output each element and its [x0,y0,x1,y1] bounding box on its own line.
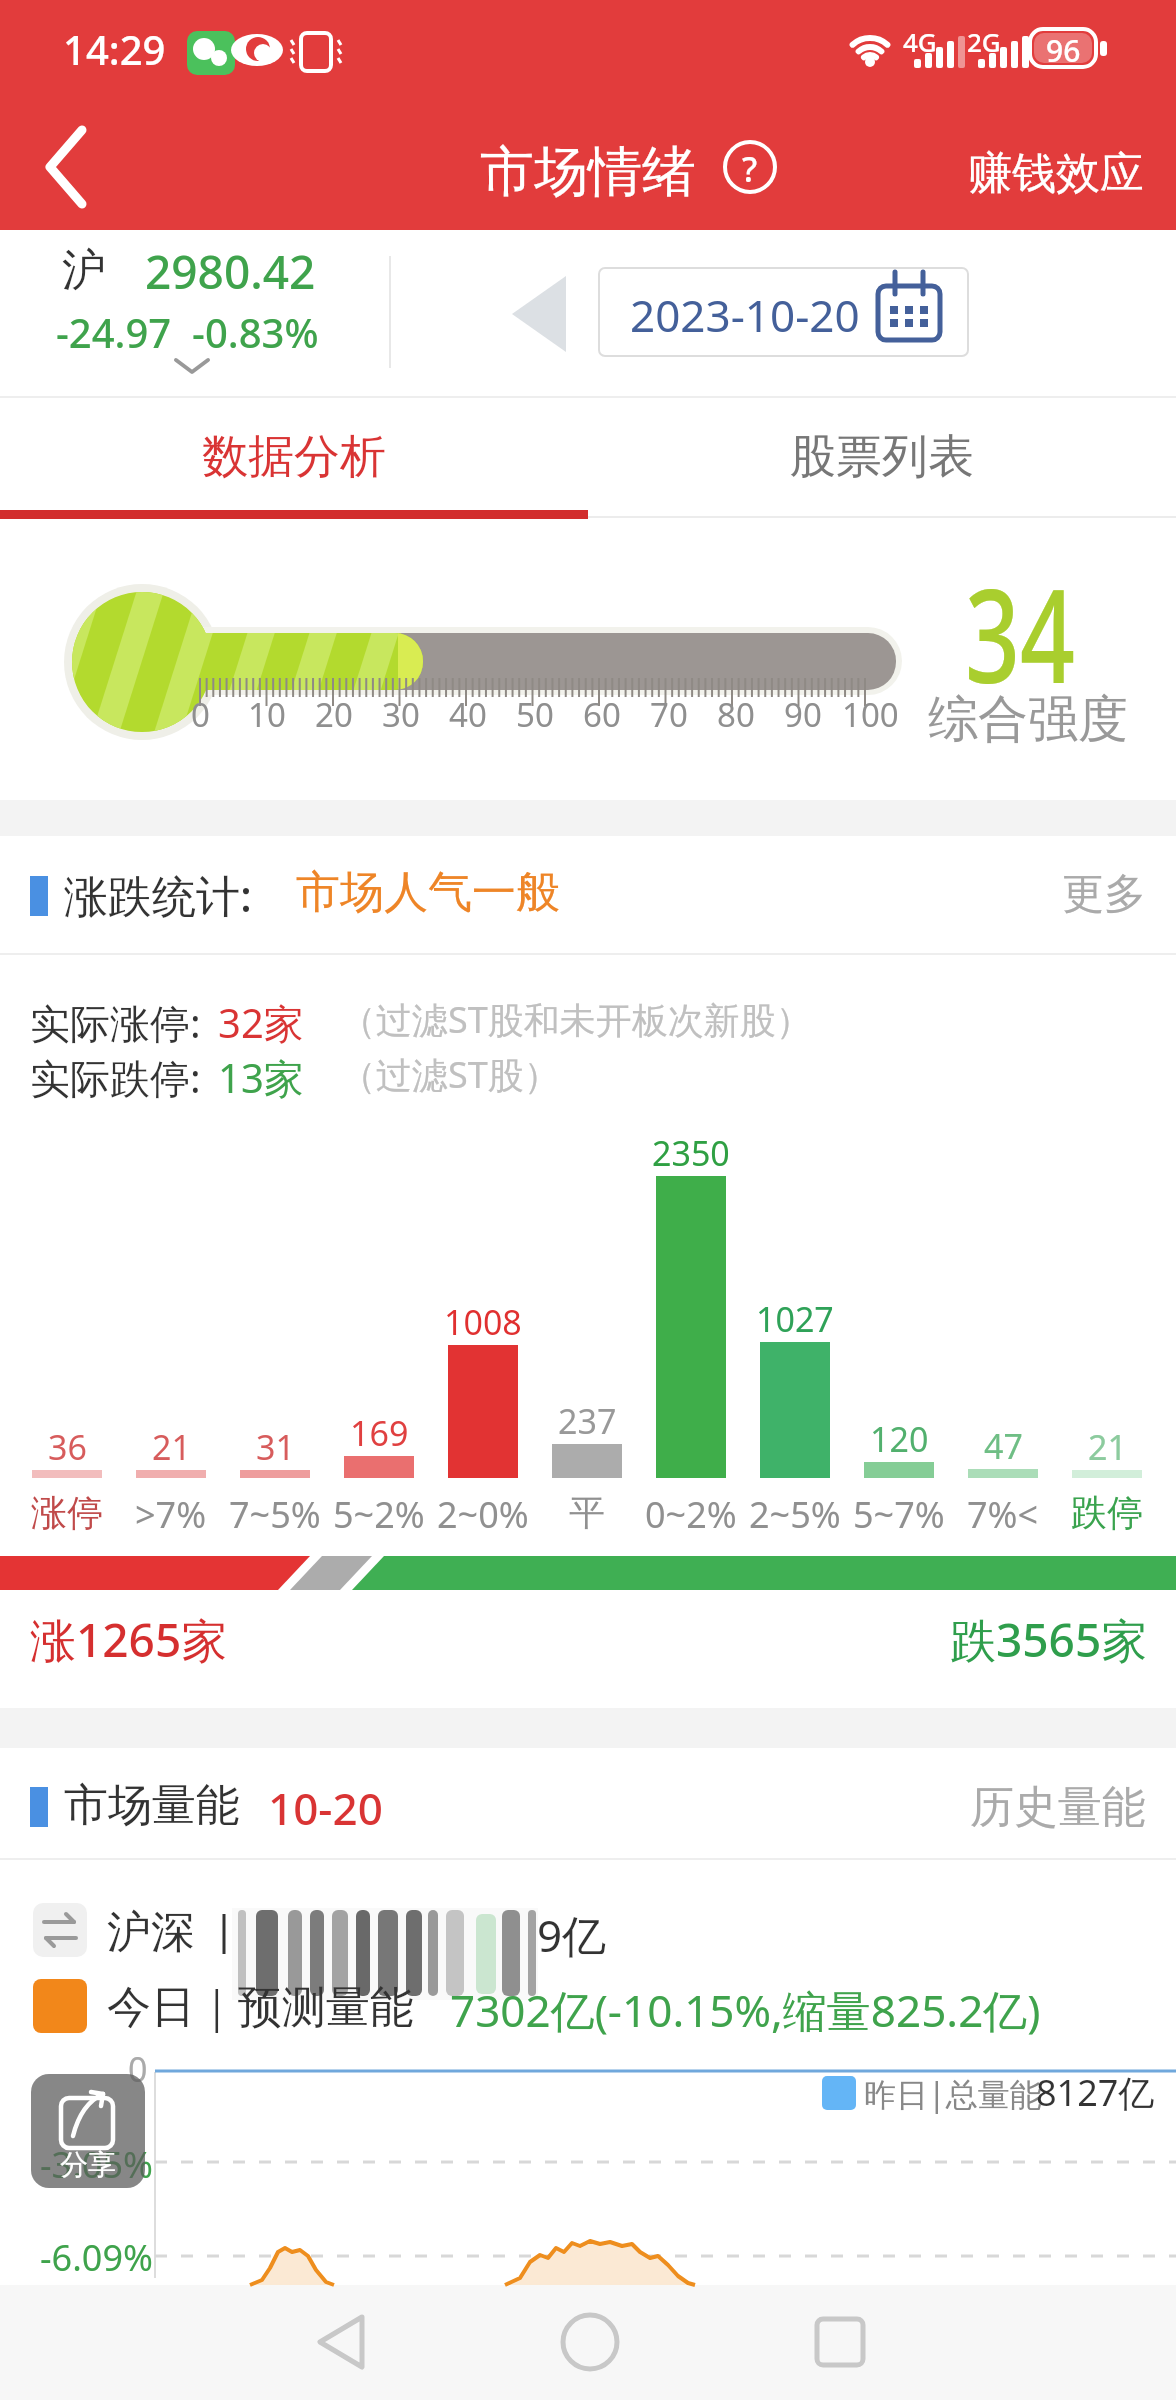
staticText: 100 [842,692,899,737]
staticText: 14:29 [63,22,166,76]
staticText: 237 [558,1398,617,1444]
staticText: 2350 [652,1130,730,1176]
staticText: 数据分析 [202,428,386,486]
staticText: 120 [870,1416,929,1462]
staticText: 30 [382,692,420,737]
button[interactable] [588,400,1176,518]
staticText: 2980.42 [145,240,316,303]
staticText: 13家 [218,1050,304,1105]
staticText: 涨1265家 [30,1608,228,1671]
staticText: 60 [583,692,621,737]
button[interactable] [20,120,130,215]
staticText: 分享 [60,2147,116,2182]
staticText: 0 [191,692,210,737]
button[interactable]: 分享 [31,2074,145,2188]
staticText: 5~2% [333,1490,425,1539]
staticText: 更多 [1062,868,1146,921]
staticText: 90 [784,692,822,737]
staticText: ? [742,146,758,192]
staticText: 36 [48,1424,87,1470]
staticText: 34 [965,544,1075,721]
staticText: 21 [1088,1424,1127,1470]
staticText: 1027 [756,1296,834,1342]
staticText: 2G [967,24,1001,59]
staticText: 169 [350,1410,409,1456]
button[interactable] [280,2295,400,2395]
staticText: 2~0% [437,1490,529,1539]
staticText: 40 [449,692,487,737]
staticText: 昨日|总量能 [864,2072,1042,2116]
staticText: 7~5% [229,1490,321,1539]
staticText: 47 [984,1423,1023,1469]
staticText: 9亿 [537,1905,607,1965]
staticText: 跌3565家 [950,1608,1148,1671]
staticText: 赚钱效应 [968,146,1144,201]
staticText: 0 [128,2046,148,2092]
staticText: 21 [152,1424,191,1470]
staticText: 平 [569,1490,605,1535]
staticText: 沪 [62,243,106,298]
staticText: 32家 [218,995,304,1050]
staticText: 市场人气一般 [296,865,560,920]
staticText: 沪深 [107,1905,195,1960]
button[interactable] [530,2295,650,2395]
staticText: 10 [248,692,286,737]
staticText: 市场量能 [64,1778,240,1833]
staticText: 涨停 [31,1490,103,1535]
button[interactable] [1030,860,1160,920]
button[interactable] [950,1780,1160,1840]
staticText: 今日｜预测量能 [107,1980,415,2035]
staticText: 50 [516,692,554,737]
staticText: 20 [315,692,353,737]
staticText: 综合强度 [928,688,1128,751]
staticText: 实际涨停: [30,995,201,1050]
button[interactable] [780,2295,900,2395]
staticText: 8127亿 [1036,2068,1155,2117]
staticText: （过滤ST股） [340,1050,560,1099]
staticText: -3.05% [40,2140,153,2189]
staticText: 市场情绪 [480,138,696,206]
staticText: 实际跌停: [30,1050,201,1105]
staticText: -6.09% [40,2233,153,2282]
staticText: 80 [717,692,755,737]
staticText: 历史量能 [970,1780,1146,1835]
button[interactable] [0,400,588,518]
staticText: （过滤ST股和未开板次新股） [340,995,812,1044]
staticText: 涨跌统计: [64,865,252,925]
staticText: 1008 [444,1299,522,1345]
staticText: 70 [650,692,688,737]
staticText: 31 [256,1424,295,1470]
button[interactable] [599,268,968,356]
staticText: 股票列表 [790,428,974,486]
staticText: 5~7% [853,1490,945,1539]
staticText: >7% [135,1490,207,1539]
staticText: 4G [903,24,937,59]
staticText: 96 [1046,30,1081,71]
staticText: -24.97 -0.83% [56,305,319,359]
staticText: 7%< [967,1490,1039,1539]
staticText: 0~2% [645,1490,737,1539]
staticText: 跌停 [1071,1490,1143,1535]
staticText: 2~5% [749,1490,841,1539]
staticText: 10-20 [268,1778,383,1838]
staticText: 7302亿(-10.15%,缩量825.2亿) [450,1980,1041,2040]
staticText: 2023-10-20 [630,285,860,345]
button[interactable] [955,130,1155,205]
